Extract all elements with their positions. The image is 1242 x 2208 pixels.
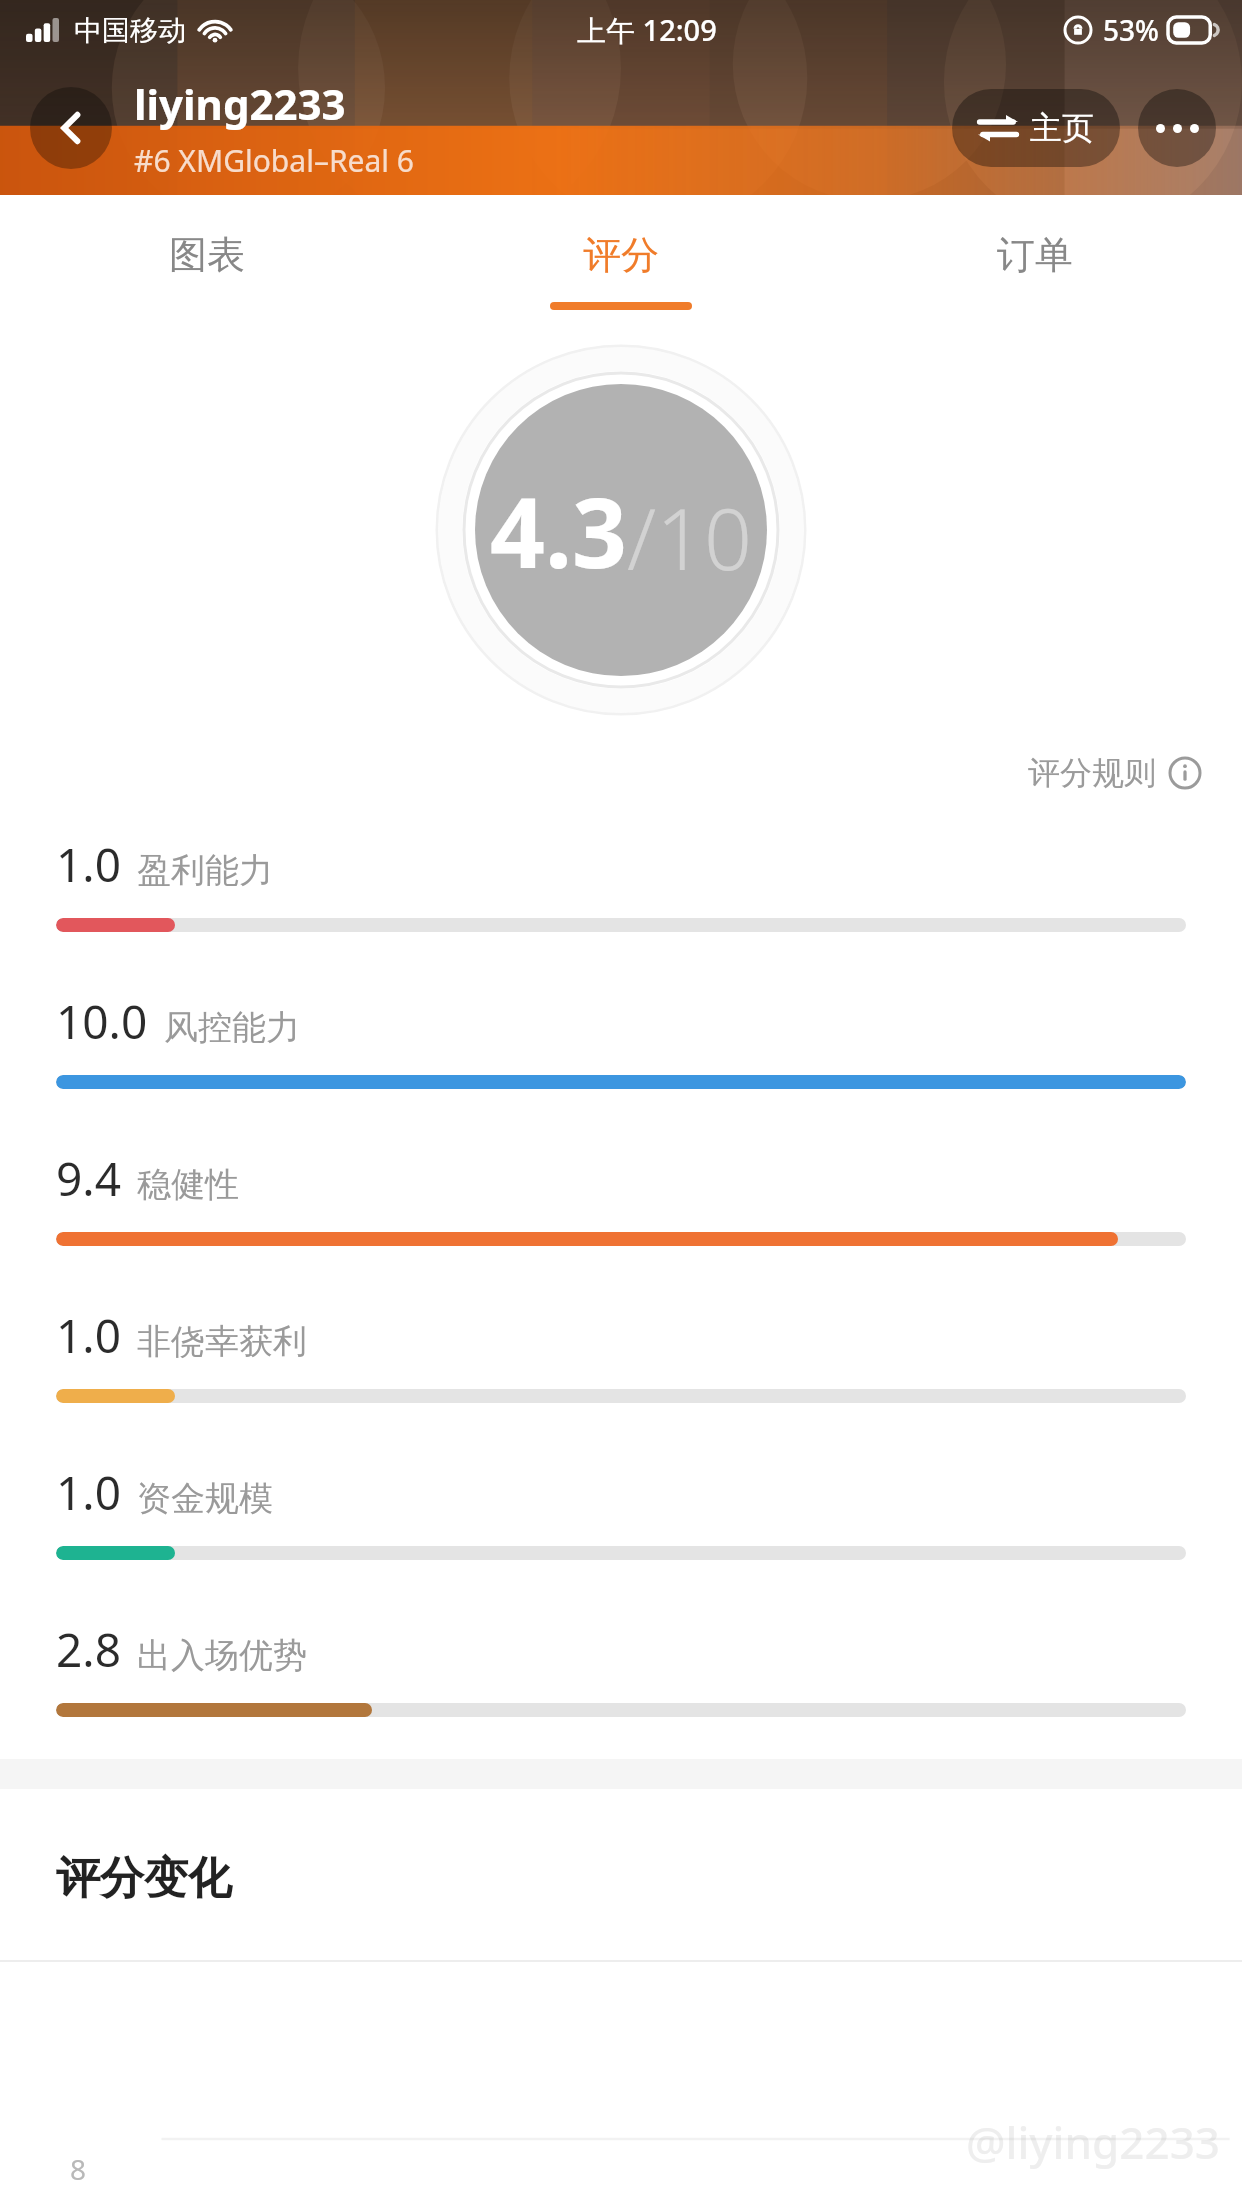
staticText: 图表 [169,231,245,279]
button[interactable]: 订单 [828,195,1242,315]
staticText: 评分 [583,231,659,279]
staticText: 9.4 [56,1147,121,1210]
staticText: 评分规则 [1028,753,1156,793]
staticText: 稳健性 [137,1163,239,1206]
staticText: 评分变化 [56,1851,232,1906]
button[interactable]: 2.8 [0,1596,1242,1753]
button[interactable]: 评分 [414,195,828,315]
staticText: #6 XMGlobal–Real 6 [134,140,414,181]
staticText: 中国移动 [74,13,186,48]
staticText: 1.0 [56,1461,121,1524]
button[interactable]: 评分规则 [1020,745,1210,801]
button[interactable]: 1.0 [0,811,1242,968]
button[interactable]: 9.4 [0,1125,1242,1282]
button[interactable]: 图表 [0,195,414,315]
staticText: 8 [70,2150,87,2188]
button[interactable]: 主页 [952,89,1120,167]
staticText: /10 [627,480,753,594]
staticText: 2.8 [56,1618,121,1681]
button[interactable]: 10.0 [0,968,1242,1125]
staticText: 1.0 [56,833,121,896]
button[interactable]: 1.0 [0,1282,1242,1439]
staticText: 53% [1103,11,1159,49]
staticText: 10.0 [56,990,148,1053]
staticText: 4.3 [490,465,627,596]
staticText: 1.0 [56,1304,121,1367]
staticText: 订单 [997,231,1073,279]
staticText: 资金规模 [137,1477,273,1520]
staticText: 出入场优势 [137,1634,307,1677]
staticText: 盈利能力 [137,849,273,892]
staticText: liying2233 [134,75,346,132]
staticText: 非侥幸获利 [137,1320,307,1363]
button[interactable]: 返回 [30,87,112,169]
staticText: @liying2233 [966,2112,1220,2172]
staticText: 风控能力 [164,1006,300,1049]
staticText: 上午 12:09 [577,10,717,50]
button[interactable]: 1.0 [0,1439,1242,1596]
button[interactable]: 更多 [1138,89,1216,167]
staticText: 主页 [1030,108,1094,148]
